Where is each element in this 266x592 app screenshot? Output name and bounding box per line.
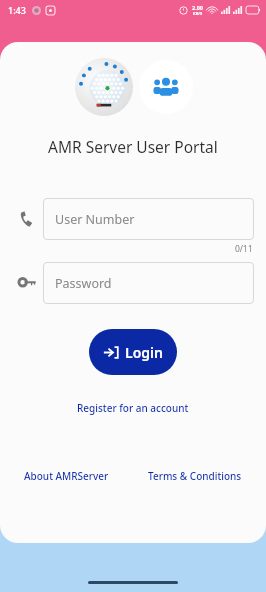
staticText: 2.00: [192, 4, 203, 11]
staticText: User Number: [55, 211, 135, 228]
staticText: Register for an account: [77, 401, 189, 415]
button[interactable]: Login: [89, 329, 177, 375]
staticText: KB/S: [193, 11, 203, 16]
staticText: Password: [55, 275, 112, 292]
button[interactable]: Terms & Conditions: [144, 466, 246, 486]
staticText: Terms & Conditions: [148, 469, 242, 483]
staticText: About AMRServer: [24, 469, 109, 483]
other: Users: [139, 60, 193, 114]
staticText: 0/11: [235, 243, 253, 255]
button[interactable]: User Number: [43, 198, 254, 240]
staticText: AMR Server User Portal: [48, 136, 218, 157]
button[interactable]: Register for an account: [71, 398, 195, 418]
staticText: 1:43: [8, 4, 26, 16]
button[interactable]: About AMRServer: [20, 466, 113, 486]
button[interactable]: Password: [43, 262, 254, 304]
staticText: Login: [125, 343, 163, 362]
other: Password: [18, 274, 36, 292]
other: Phone: [19, 211, 36, 228]
